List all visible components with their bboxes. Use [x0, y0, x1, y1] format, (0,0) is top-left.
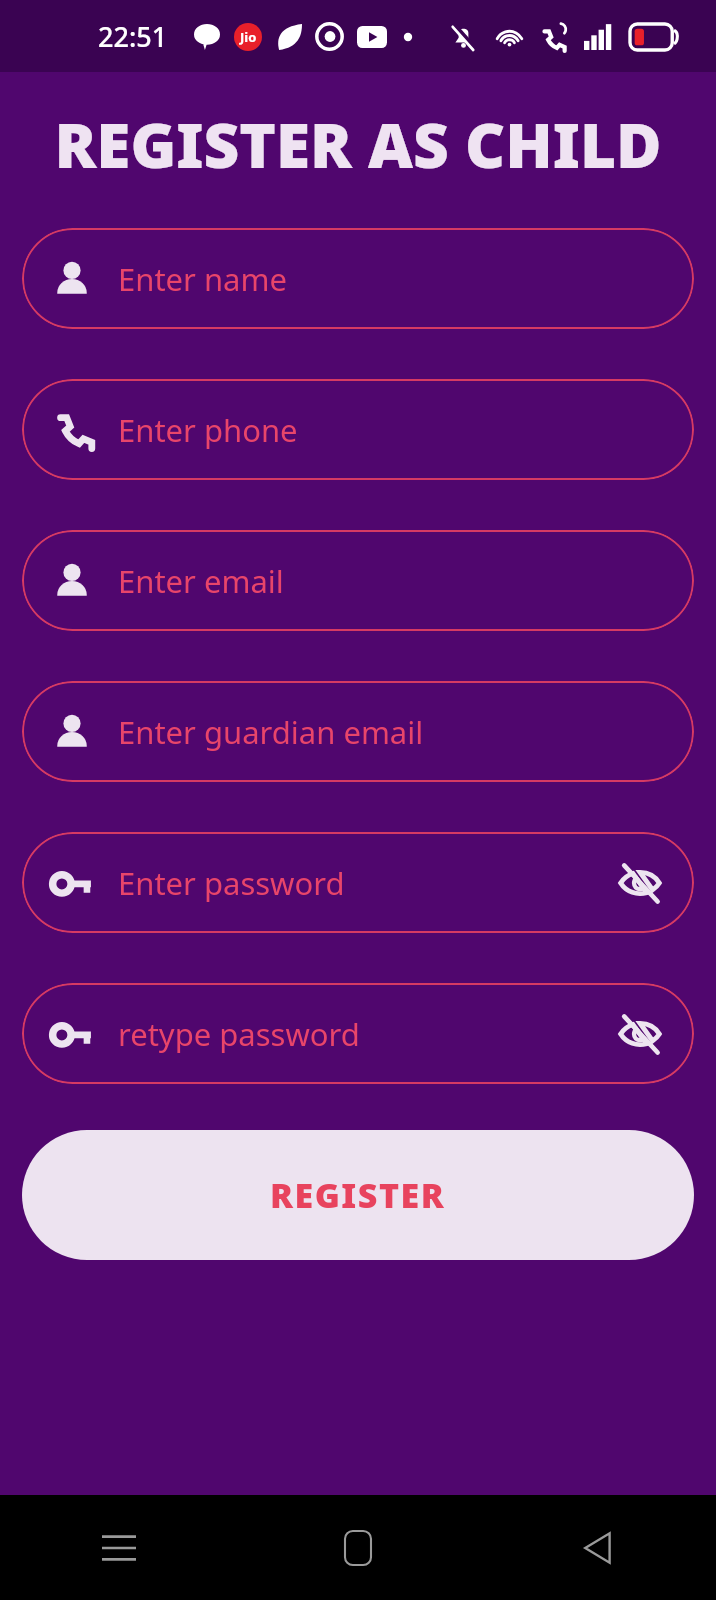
staticText: retype password [118, 1013, 614, 1055]
button[interactable]: Recent apps [0, 1495, 238, 1600]
button[interactable]: retype password [22, 983, 694, 1084]
staticText: REGISTER AS CHILD [50, 102, 666, 186]
staticText: Enter email [118, 560, 666, 602]
button[interactable]: Enter password [22, 832, 694, 933]
staticText: 22:51 [98, 18, 168, 55]
staticText: Enter name [118, 258, 666, 300]
button[interactable]: Home [238, 1495, 477, 1600]
button[interactable]: Enter phone [22, 379, 694, 480]
staticText: REGISTER [270, 1172, 446, 1218]
button[interactable]: REGISTER [22, 1130, 694, 1260]
staticText: Enter guardian email [118, 711, 666, 753]
button[interactable]: Enter email [22, 530, 694, 631]
button[interactable]: Enter name [22, 228, 694, 329]
button[interactable]: Enter guardian email [22, 681, 694, 782]
staticText: Enter phone [118, 409, 666, 451]
button[interactable]: Show password [614, 1008, 666, 1060]
staticText: Enter password [118, 862, 614, 904]
button[interactable]: Show password [614, 857, 666, 909]
staticText: Jio [240, 28, 257, 46]
button[interactable]: Back [477, 1495, 716, 1600]
